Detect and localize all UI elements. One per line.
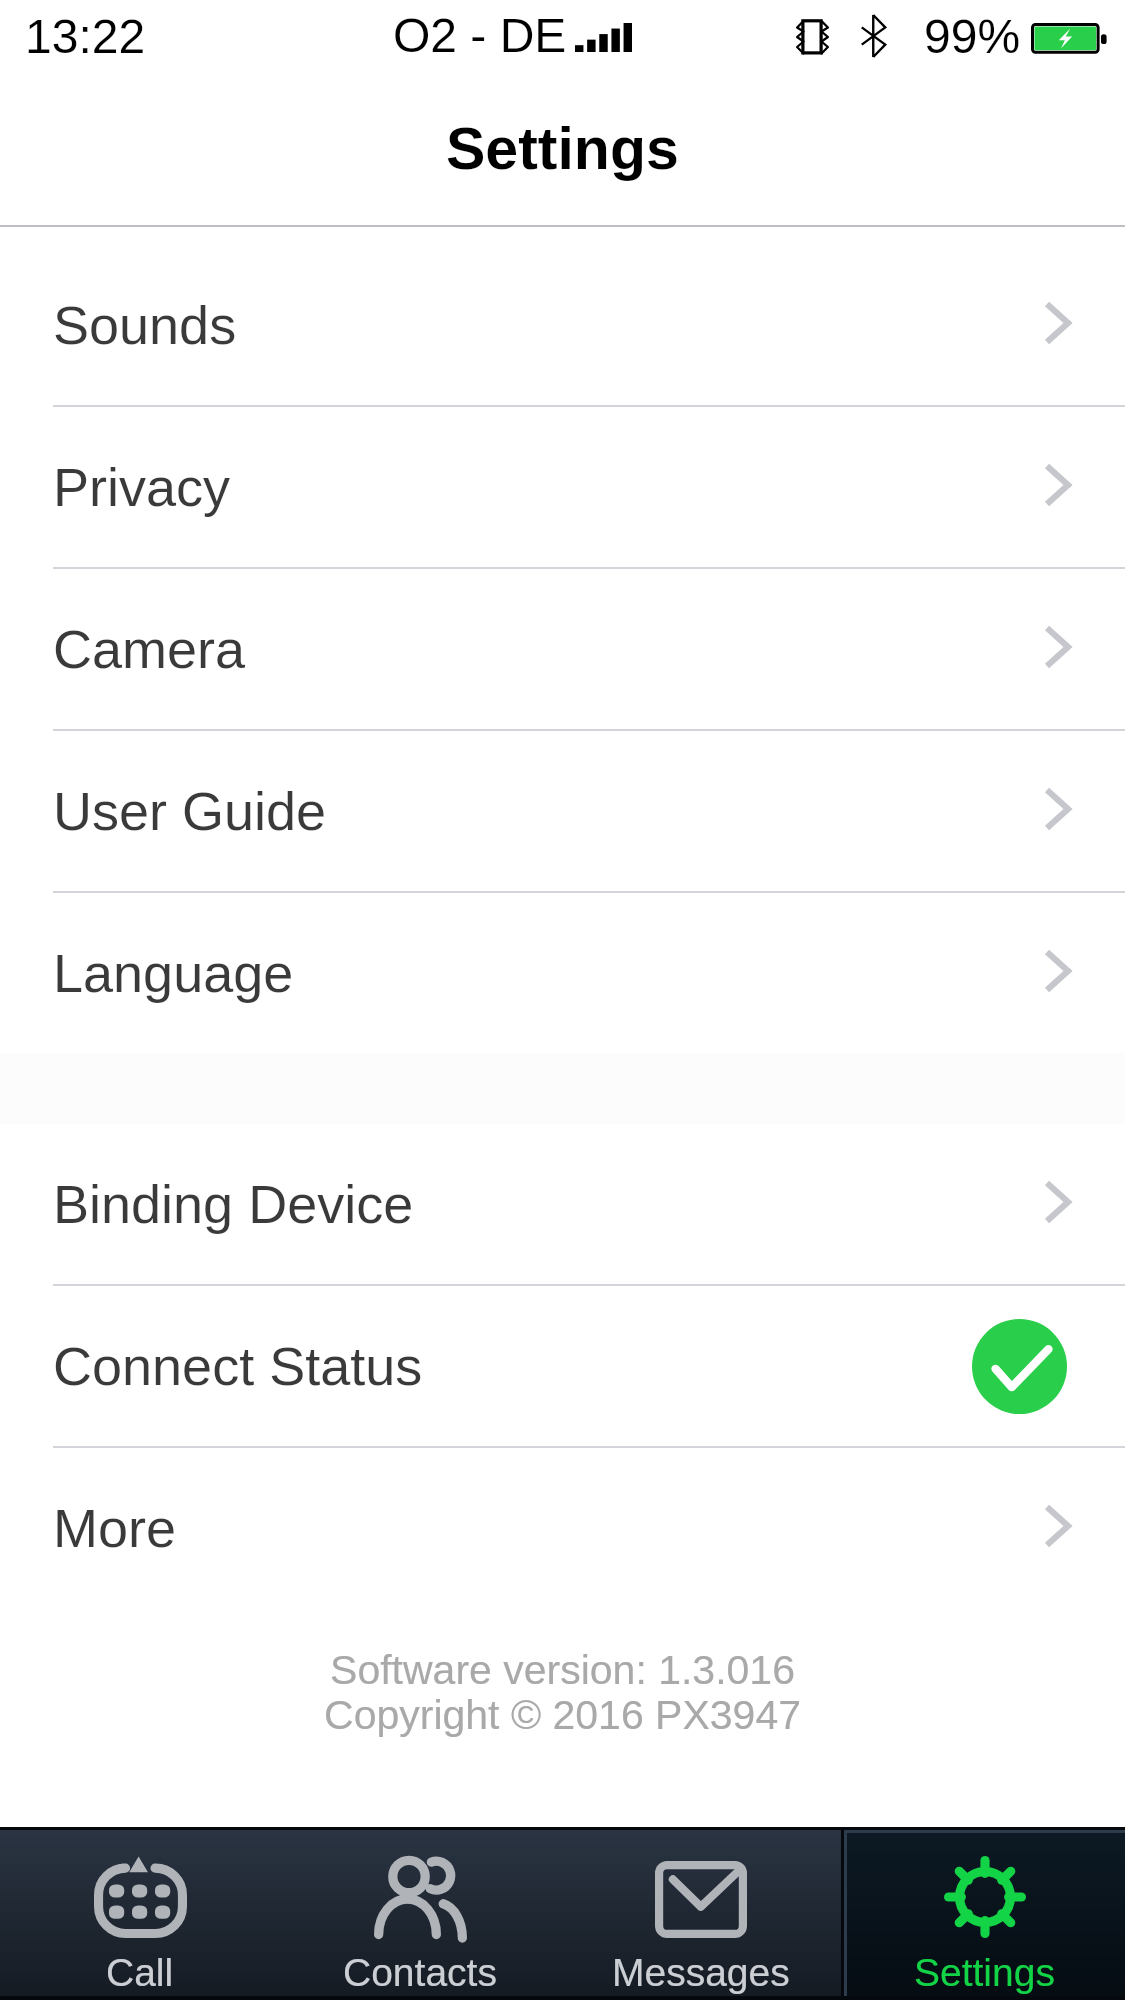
staticText: More <box>53 1498 177 1558</box>
staticText: Settings <box>914 1951 1055 1995</box>
button[interactable]: Sounds <box>0 245 1125 405</box>
staticText: 13:22 <box>25 10 146 64</box>
staticText: User Guide <box>53 781 327 841</box>
staticText: Connect Status <box>53 1336 423 1396</box>
staticText: Camera <box>53 619 246 679</box>
button[interactable]: Privacy <box>0 407 1125 567</box>
staticText: O2 - DE <box>393 9 567 63</box>
staticText: Language <box>53 943 294 1003</box>
button[interactable]: Messages <box>560 1830 841 1996</box>
staticText: 99% <box>924 10 1021 64</box>
staticText: Settings <box>446 116 679 182</box>
staticText: Contacts <box>343 1951 497 1995</box>
button[interactable]: Connect Status <box>0 1286 1125 1446</box>
staticText: Sounds <box>53 295 237 355</box>
staticText: Call <box>106 1951 174 1995</box>
staticText: Software version: 1.3.016 Copyright © 20… <box>0 1647 1125 1738</box>
button[interactable]: Binding Device <box>0 1124 1125 1284</box>
staticText: Binding Device <box>53 1174 414 1234</box>
button[interactable]: Contacts <box>280 1830 560 1996</box>
button[interactable]: More <box>0 1448 1125 1608</box>
button[interactable]: Camera <box>0 569 1125 729</box>
staticText: Privacy <box>53 457 231 517</box>
button[interactable]: Settings <box>844 1830 1125 1996</box>
button[interactable]: User Guide <box>0 731 1125 891</box>
staticText: Messages <box>612 1951 790 1995</box>
button[interactable]: Call <box>0 1830 280 1996</box>
button[interactable]: Language <box>0 893 1125 1053</box>
